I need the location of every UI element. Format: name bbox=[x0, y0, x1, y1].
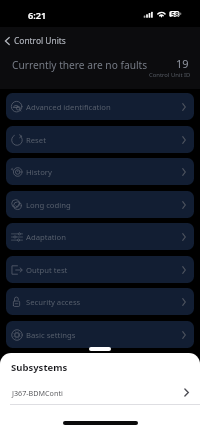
staticText: Long coding bbox=[26, 200, 71, 210]
staticText: Control Unit ID bbox=[149, 71, 191, 79]
staticText: Basic settings bbox=[26, 330, 76, 340]
button[interactable]: History bbox=[6, 158, 194, 185]
button[interactable]: Advanced identification bbox=[6, 93, 194, 120]
staticText: Adaptation bbox=[26, 232, 66, 242]
staticText: Security access bbox=[26, 297, 81, 307]
staticText: 58 bbox=[171, 10, 179, 19]
button[interactable]: Output test bbox=[6, 256, 194, 283]
staticText: Subsystems bbox=[11, 361, 68, 374]
button[interactable]: Basic settings bbox=[6, 321, 194, 348]
button[interactable]: Adaptation bbox=[6, 223, 194, 250]
staticText: Control Units bbox=[14, 35, 66, 46]
staticText: 19 bbox=[176, 56, 189, 71]
button[interactable]: Reset bbox=[6, 126, 194, 153]
button[interactable]: Control Units bbox=[0, 30, 74, 49]
staticText: J367-BDMConti bbox=[12, 388, 63, 398]
staticText: Reset bbox=[26, 135, 46, 145]
staticText: Currently there are no faults bbox=[12, 58, 148, 72]
staticText: Advanced identification bbox=[26, 102, 111, 112]
staticText: History bbox=[26, 167, 52, 177]
staticText: Output test bbox=[26, 265, 68, 275]
button[interactable]: Security access bbox=[6, 288, 194, 315]
staticText: 6:21 bbox=[28, 9, 47, 22]
button[interactable]: Long coding bbox=[6, 191, 194, 218]
button[interactable]: J367-BDMConti bbox=[0, 381, 200, 404]
